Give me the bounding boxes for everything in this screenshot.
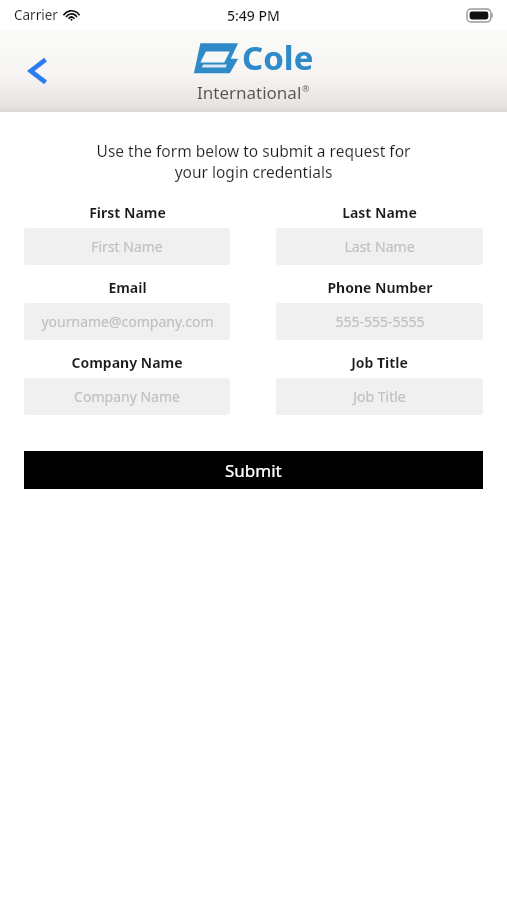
staticText: Use the form below to submit a request f…	[0, 140, 507, 183]
staticText: Company Name	[74, 387, 180, 406]
staticText: 5:49 PM	[227, 6, 280, 25]
staticText: International	[197, 81, 302, 104]
button[interactable]: Company Name	[24, 378, 230, 415]
button[interactable]: First Name	[24, 228, 230, 265]
staticText: Last Name	[344, 237, 415, 256]
staticText: Carrier	[14, 6, 58, 24]
button[interactable]: Back	[10, 43, 66, 99]
staticText: yourname@company.com	[41, 312, 214, 331]
button[interactable]: Job Title	[276, 378, 483, 415]
staticText: Email	[108, 278, 147, 297]
staticText: Job Title	[353, 387, 406, 406]
staticText: Cole	[242, 35, 314, 80]
staticText: ®	[302, 82, 310, 94]
button[interactable]: Submit	[24, 451, 483, 489]
staticText: Submit	[225, 459, 282, 482]
staticText: First Name	[89, 203, 166, 222]
staticText: Phone Number	[327, 278, 433, 297]
staticText: 555-555-5555	[335, 312, 425, 331]
button[interactable]: 555-555-5555	[276, 303, 483, 340]
staticText: Last Name	[342, 203, 417, 222]
button[interactable]: Last Name	[276, 228, 483, 265]
button[interactable]: yourname@company.com	[24, 303, 230, 340]
staticText: First Name	[91, 237, 163, 256]
staticText: Job Title	[351, 353, 408, 372]
staticText: Company Name	[71, 353, 183, 372]
